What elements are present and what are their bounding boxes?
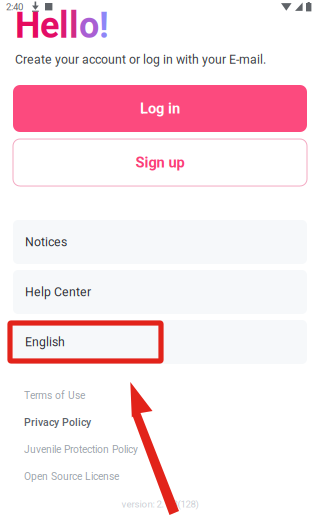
button[interactable]: Notices	[13, 220, 307, 264]
staticText: o	[79, 4, 99, 47]
button[interactable]: Sign up	[13, 139, 307, 186]
staticText: Help Center	[25, 285, 91, 299]
staticText: Open Source License	[24, 470, 119, 482]
staticText: H	[15, 4, 40, 47]
button[interactable]: Juvenile Protection Policy	[24, 436, 307, 463]
staticText: l	[69, 4, 79, 47]
staticText: e	[40, 4, 59, 47]
staticText: Log in	[140, 100, 180, 117]
staticText: l	[59, 4, 69, 47]
button[interactable]: Terms of Use	[24, 382, 307, 409]
button[interactable]: English	[13, 320, 307, 364]
staticText: Notices	[25, 235, 67, 249]
button[interactable]: Help Center	[13, 270, 307, 314]
staticText: Terms of Use	[24, 389, 85, 401]
staticText: !	[99, 4, 109, 47]
button[interactable]: Privacy Policy	[24, 409, 307, 436]
staticText: Juvenile Protection Policy	[24, 443, 138, 455]
staticText: version: 2.1.8(128)	[121, 499, 198, 510]
button[interactable]: Open Source License	[24, 463, 307, 490]
staticText: Privacy Policy	[24, 416, 91, 429]
staticText: English	[25, 335, 65, 349]
button[interactable]: Log in	[13, 85, 307, 132]
staticText: Sign up	[135, 154, 184, 171]
staticText: Create your account or log in with your …	[15, 52, 266, 67]
staticText: 2:40	[6, 1, 23, 13]
